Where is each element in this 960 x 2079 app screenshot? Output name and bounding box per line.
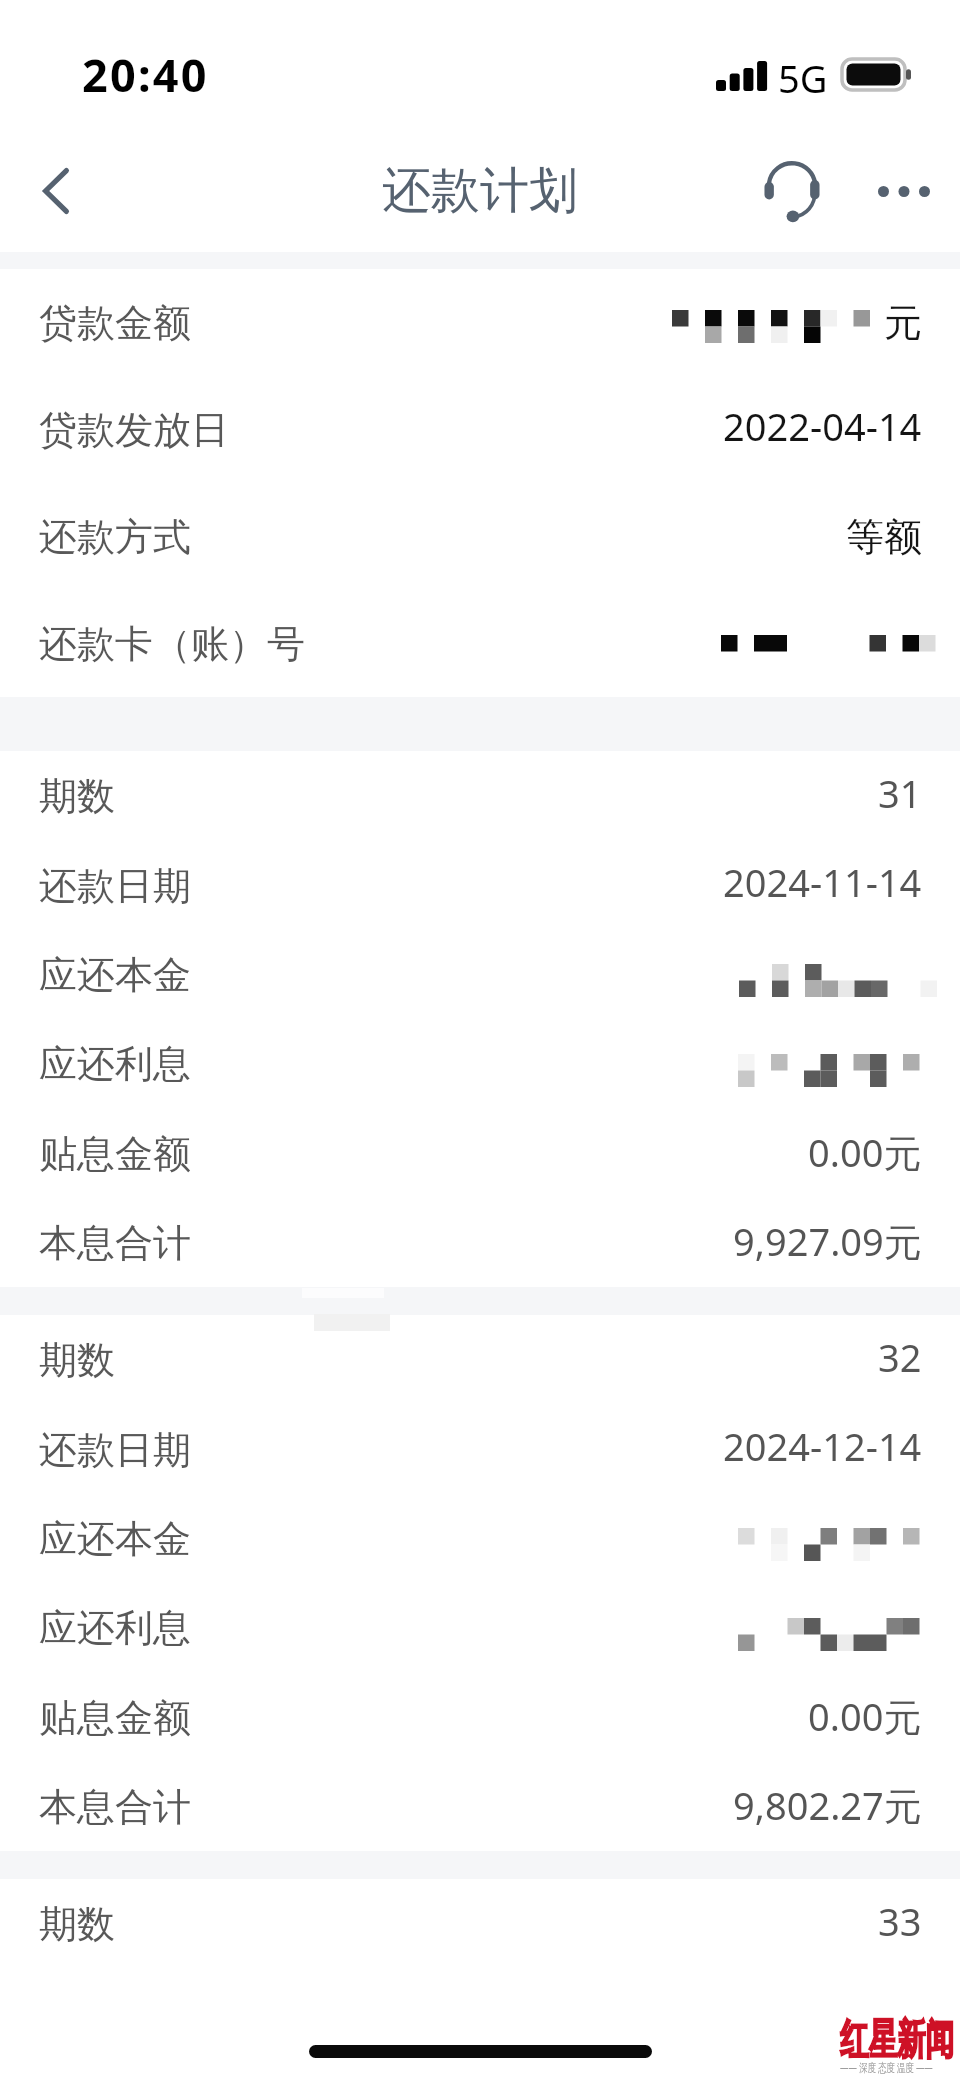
staticText: 应还本金 xyxy=(39,1515,191,1563)
staticText: 期数 xyxy=(39,1900,115,1948)
staticText: 应还利息 xyxy=(39,1604,191,1652)
staticText: 还款日期 xyxy=(39,862,191,910)
staticText: 还款计划 xyxy=(382,160,578,222)
staticText: 应还利息 xyxy=(39,1040,191,1088)
button[interactable]: 应还利息 xyxy=(0,1019,960,1109)
button[interactable]: 贷款金额 xyxy=(0,269,960,376)
button[interactable]: 期数 xyxy=(0,751,960,841)
staticText: 20:40 xyxy=(82,44,209,105)
button[interactable]: 应还利息 xyxy=(0,1583,960,1673)
staticText: 贷款金额 xyxy=(39,299,191,347)
staticText: 2024-11-14 xyxy=(723,856,922,908)
staticText: 0.00元 xyxy=(808,1126,922,1178)
button[interactable]: 贷款发放日 xyxy=(0,376,960,483)
staticText: 33 xyxy=(878,1895,922,1947)
staticText: 5G xyxy=(778,52,828,104)
staticText: 期数 xyxy=(39,1336,115,1384)
button[interactable]: 期数 xyxy=(0,1315,960,1405)
staticText: 32 xyxy=(878,1331,922,1383)
staticText: 31 xyxy=(878,767,922,819)
staticText: 贴息金额 xyxy=(39,1694,191,1742)
button[interactable]: 还款日期 xyxy=(0,841,960,930)
staticText: 元 xyxy=(884,299,922,347)
button[interactable]: 本息合计 xyxy=(0,1762,960,1851)
staticText: 红星新闻 xyxy=(840,2014,953,2067)
staticText: 等额 xyxy=(846,513,922,561)
staticText: 贷款发放日 xyxy=(39,406,229,454)
button[interactable]: Customer service xyxy=(746,130,838,252)
button[interactable]: Back xyxy=(0,130,112,252)
staticText: 本息合计 xyxy=(39,1219,191,1267)
staticText: 0.00元 xyxy=(808,1690,922,1742)
staticText: 期数 xyxy=(39,772,115,820)
staticText: 2024-12-14 xyxy=(723,1420,922,1472)
staticText: 本息合计 xyxy=(39,1783,191,1831)
staticText: 还款日期 xyxy=(39,1426,191,1474)
staticText: 应还本金 xyxy=(39,951,191,999)
staticText: 还款方式 xyxy=(39,513,191,561)
button[interactable]: 本息合计 xyxy=(0,1198,960,1287)
staticText: 还款卡（账）号 xyxy=(39,620,305,668)
button[interactable]: 还款方式 xyxy=(0,483,960,590)
button[interactable]: 应还本金 xyxy=(0,930,960,1019)
staticText: 2022-04-14 xyxy=(723,400,922,452)
staticText: 9,802.27元 xyxy=(733,1779,922,1831)
button[interactable]: 期数 xyxy=(0,1879,960,1969)
button[interactable]: 还款卡（账）号 xyxy=(0,590,960,697)
button[interactable]: 贴息金额 xyxy=(0,1109,960,1198)
button[interactable]: 贴息金额 xyxy=(0,1673,960,1762)
button[interactable]: 应还本金 xyxy=(0,1494,960,1583)
staticText: 贴息金额 xyxy=(39,1130,191,1178)
button[interactable]: 还款日期 xyxy=(0,1405,960,1494)
button[interactable]: More options xyxy=(858,130,950,252)
staticText: —— 深度 态度 温度 —— xyxy=(840,2059,933,2075)
staticText: 9,927.09元 xyxy=(733,1215,922,1267)
